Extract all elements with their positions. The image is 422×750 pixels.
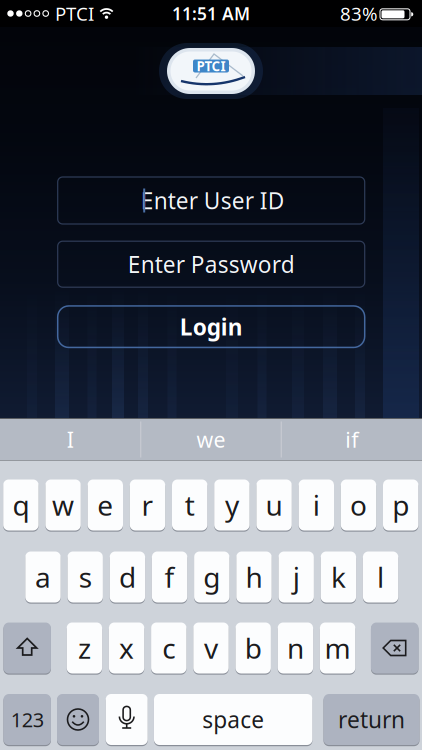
button[interactable]: g bbox=[194, 550, 229, 603]
button[interactable]: o bbox=[341, 478, 376, 531]
button[interactable]: space bbox=[154, 693, 312, 746]
staticText: PTCI bbox=[55, 1, 94, 26]
staticText: t bbox=[185, 486, 195, 524]
staticText: v bbox=[204, 629, 218, 667]
button[interactable]: r bbox=[130, 478, 165, 531]
button[interactable]: m bbox=[320, 621, 355, 674]
button[interactable]: Enter User ID bbox=[58, 177, 365, 224]
button[interactable]: i bbox=[299, 478, 334, 531]
staticText: a bbox=[35, 558, 51, 596]
button[interactable]: a bbox=[25, 550, 61, 603]
staticText: i bbox=[313, 486, 320, 524]
staticText: m bbox=[325, 629, 351, 667]
staticText: 11:51 AM bbox=[172, 2, 250, 25]
button[interactable]: j bbox=[278, 550, 314, 603]
staticText: we bbox=[196, 425, 225, 454]
staticText: g bbox=[203, 558, 220, 596]
button[interactable]: v bbox=[193, 621, 229, 674]
staticText: 83% bbox=[340, 1, 378, 26]
staticText: e bbox=[97, 486, 113, 524]
staticText: h bbox=[245, 558, 262, 596]
staticText: PTCI bbox=[196, 57, 225, 75]
button[interactable]: return bbox=[323, 693, 419, 746]
button[interactable] bbox=[57, 693, 99, 746]
staticText: k bbox=[331, 558, 346, 596]
button[interactable]: f bbox=[152, 550, 187, 603]
button[interactable]: l bbox=[363, 550, 398, 603]
staticText: Enter User ID bbox=[141, 185, 285, 215]
button[interactable] bbox=[371, 621, 418, 674]
staticText: 123 bbox=[11, 706, 44, 733]
button[interactable]: c bbox=[151, 621, 186, 674]
staticText: space bbox=[202, 704, 264, 734]
button[interactable]: Login bbox=[58, 306, 365, 347]
button[interactable]: n bbox=[278, 621, 313, 674]
staticText: z bbox=[78, 629, 91, 667]
button[interactable]: q bbox=[3, 478, 39, 531]
button[interactable] bbox=[3, 621, 51, 674]
button[interactable]: b bbox=[235, 621, 271, 674]
staticText: if bbox=[345, 425, 358, 454]
staticText: r bbox=[141, 486, 153, 524]
staticText: d bbox=[119, 558, 136, 596]
staticText: q bbox=[12, 486, 29, 524]
button[interactable]: u bbox=[256, 478, 292, 531]
button[interactable]: I bbox=[1, 418, 139, 460]
staticText: Enter Password bbox=[128, 249, 295, 279]
button[interactable]: t bbox=[172, 478, 207, 531]
button[interactable]: if bbox=[283, 418, 421, 460]
button[interactable]: 123 bbox=[3, 693, 51, 746]
staticText: s bbox=[79, 558, 92, 596]
button[interactable]: e bbox=[88, 478, 123, 531]
button[interactable]: we bbox=[142, 418, 280, 460]
staticText: return bbox=[338, 704, 405, 734]
button[interactable]: p bbox=[383, 478, 418, 531]
staticText: f bbox=[165, 558, 175, 596]
staticText: I bbox=[67, 425, 74, 454]
button[interactable]: x bbox=[109, 621, 144, 674]
staticText: y bbox=[225, 486, 239, 524]
button[interactable]: d bbox=[110, 550, 145, 603]
staticText: p bbox=[392, 486, 409, 524]
staticText: l bbox=[377, 558, 384, 596]
button[interactable]: z bbox=[67, 621, 102, 674]
staticText: c bbox=[162, 629, 175, 667]
staticText: w bbox=[52, 486, 74, 524]
button[interactable]: Enter Password bbox=[58, 241, 365, 287]
button[interactable] bbox=[106, 693, 148, 746]
staticText: x bbox=[119, 629, 134, 667]
staticText: Login bbox=[180, 312, 243, 342]
staticText: b bbox=[245, 629, 262, 667]
button[interactable]: s bbox=[67, 550, 103, 603]
staticText: j bbox=[293, 558, 300, 596]
staticText: o bbox=[350, 486, 367, 524]
button[interactable]: y bbox=[214, 478, 250, 531]
button[interactable]: w bbox=[45, 478, 81, 531]
button[interactable]: h bbox=[236, 550, 272, 603]
staticText: u bbox=[266, 486, 283, 524]
button[interactable]: k bbox=[321, 550, 356, 603]
staticText: n bbox=[287, 629, 304, 667]
